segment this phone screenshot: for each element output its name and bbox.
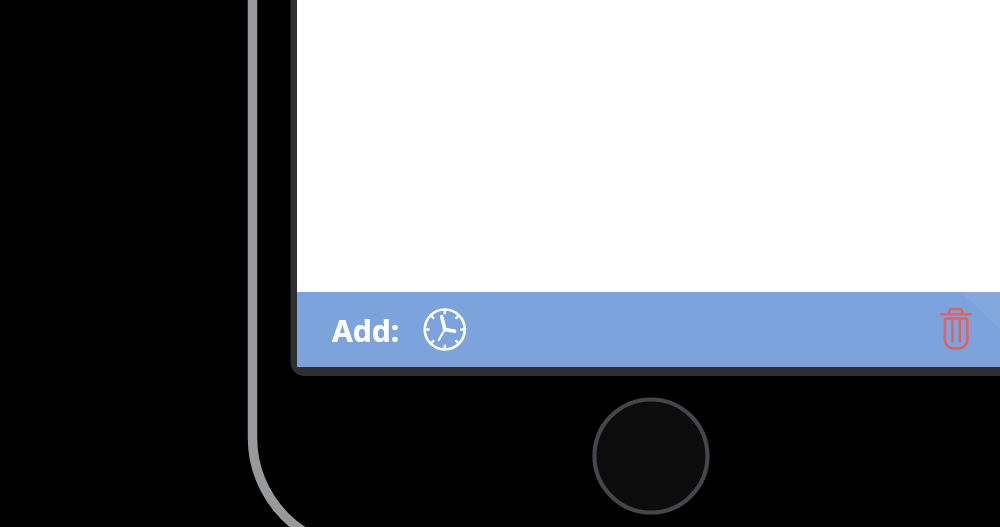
button[interactable] bbox=[420, 304, 470, 354]
staticText: Add: bbox=[332, 310, 400, 351]
button[interactable] bbox=[934, 302, 978, 356]
